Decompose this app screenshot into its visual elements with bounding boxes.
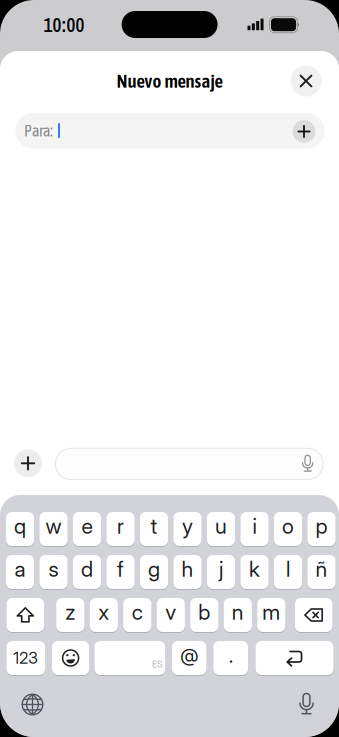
staticText: k	[249, 556, 260, 582]
staticText: 10:00	[43, 12, 84, 38]
staticText: t	[150, 513, 157, 539]
staticText: @	[180, 644, 198, 666]
staticText: h	[181, 556, 193, 582]
button[interactable]: u	[207, 511, 235, 547]
button[interactable]: y	[173, 511, 202, 547]
button[interactable]: j	[207, 554, 235, 590]
button[interactable]: r	[106, 511, 135, 547]
button[interactable]	[256, 640, 333, 676]
staticText: s	[48, 556, 58, 582]
button[interactable]: p	[307, 511, 336, 547]
staticText: q	[14, 513, 26, 539]
staticText: e	[81, 513, 92, 539]
button[interactable]: q	[6, 511, 34, 547]
staticText: j	[219, 556, 223, 582]
button[interactable]: l	[274, 554, 302, 590]
button[interactable]	[52, 640, 89, 676]
staticText: 123	[13, 649, 38, 667]
button[interactable]: m	[257, 597, 285, 633]
button[interactable]: d	[73, 554, 101, 590]
staticText: n	[232, 599, 244, 625]
button[interactable]: a	[6, 554, 34, 590]
staticText: v	[165, 599, 176, 625]
button[interactable]: t	[140, 511, 168, 547]
button[interactable]: c	[123, 597, 151, 633]
staticText: ES	[152, 658, 163, 669]
button[interactable]: n	[224, 597, 252, 633]
button[interactable]: x	[90, 597, 118, 633]
button[interactable]: o	[274, 511, 302, 547]
staticText: y	[182, 513, 193, 539]
button[interactable]	[295, 597, 332, 633]
button[interactable]: s	[39, 554, 68, 590]
button[interactable]: k	[240, 554, 269, 590]
staticText: w	[45, 513, 61, 539]
button[interactable]: b	[190, 597, 218, 633]
button[interactable]: g	[140, 554, 168, 590]
button[interactable]: z	[56, 597, 84, 633]
button[interactable]	[6, 597, 44, 633]
button[interactable]: @	[172, 640, 206, 676]
button[interactable]: ES	[94, 640, 165, 676]
staticText: r	[117, 513, 124, 539]
staticText: c	[132, 599, 143, 625]
button[interactable]: ñ	[307, 554, 336, 590]
staticText: p	[315, 513, 327, 539]
button[interactable]: h	[173, 554, 202, 590]
staticText: x	[98, 599, 109, 625]
staticText: a	[14, 556, 25, 582]
button[interactable]	[292, 120, 315, 143]
staticText: ñ	[315, 556, 327, 582]
button[interactable]: w	[39, 511, 68, 547]
staticText: m	[262, 599, 280, 625]
staticText: l	[286, 556, 290, 582]
staticText: i	[252, 513, 256, 539]
button[interactable]: e	[73, 511, 101, 547]
button[interactable]: .	[213, 640, 248, 676]
button[interactable]	[16, 688, 48, 720]
button[interactable]: i	[240, 511, 269, 547]
staticText: d	[81, 556, 93, 582]
button[interactable]	[55, 448, 323, 479]
button[interactable]: Para:	[15, 113, 324, 149]
staticText: b	[198, 599, 210, 625]
staticText: o	[282, 513, 294, 539]
button[interactable]: v	[157, 597, 185, 633]
staticText: Nuevo mensaje	[116, 70, 222, 92]
staticText: Para:	[24, 122, 53, 140]
button[interactable]	[14, 449, 42, 477]
staticText: u	[215, 513, 227, 539]
staticText: f	[117, 556, 124, 582]
staticText: .	[229, 644, 233, 667]
button[interactable]: 123	[6, 640, 45, 676]
staticText: z	[65, 599, 75, 625]
button[interactable]	[290, 688, 322, 720]
button[interactable]	[290, 65, 321, 96]
staticText: g	[148, 556, 160, 582]
button[interactable]: f	[106, 554, 135, 590]
